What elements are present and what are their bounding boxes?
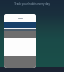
staticText: Track your habits every day [14, 2, 50, 6]
